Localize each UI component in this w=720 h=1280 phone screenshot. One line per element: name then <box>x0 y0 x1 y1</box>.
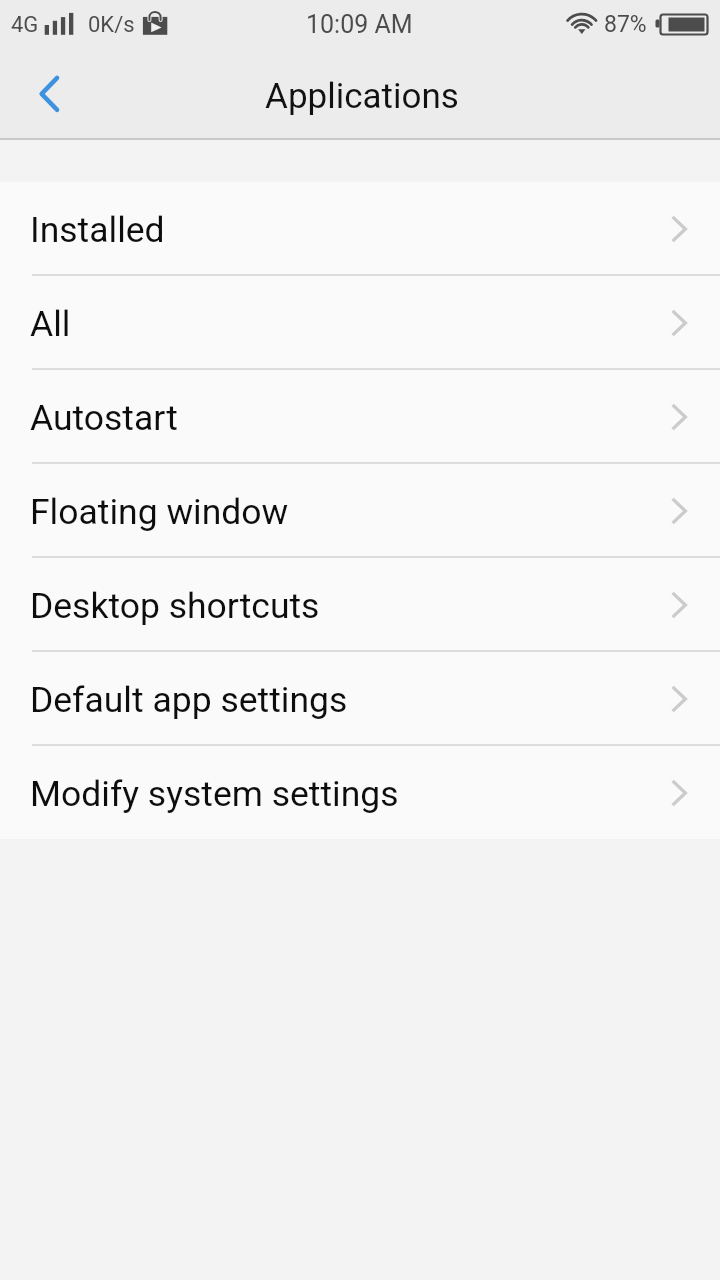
button[interactable]: Floating window <box>0 464 720 558</box>
staticText: Modify system settings <box>30 773 399 815</box>
button[interactable]: Modify system settings <box>0 746 720 839</box>
button[interactable]: Back <box>0 50 100 138</box>
staticText: 0K/s <box>88 12 135 38</box>
button[interactable]: All <box>0 276 720 370</box>
staticText: Desktop shortcuts <box>30 585 320 627</box>
staticText: 10:09 AM <box>306 10 413 39</box>
staticText: Autostart <box>30 397 178 439</box>
staticText: All <box>30 303 71 345</box>
button[interactable]: Installed <box>0 182 720 276</box>
staticText: Applications <box>265 76 459 117</box>
staticText: Default app settings <box>30 679 348 721</box>
button[interactable]: Autostart <box>0 370 720 464</box>
button[interactable]: Default app settings <box>0 652 720 746</box>
staticText: 4G <box>11 12 39 38</box>
staticText: Floating window <box>30 491 289 533</box>
staticText: Installed <box>30 209 165 251</box>
button[interactable]: Desktop shortcuts <box>0 558 720 652</box>
staticText: 87% <box>604 11 647 38</box>
